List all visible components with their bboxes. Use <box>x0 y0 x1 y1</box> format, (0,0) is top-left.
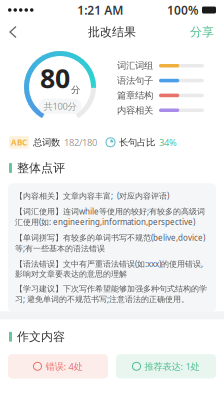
staticText: 分 <box>71 84 80 95</box>
staticText: 批改结果 <box>88 25 136 39</box>
staticText: 【词汇使用】连词while等使用的较好;有较多的高级词汇使用(如: engine… <box>15 206 205 227</box>
staticText: 34% <box>159 136 177 148</box>
staticText: 【学习建议】下次写作希望能够加强多种句式结构的学习; 避免单词的不规范书写;注意… <box>15 284 207 304</box>
staticText: 总词数 <box>33 137 60 148</box>
staticText: 篇章结构 <box>117 90 153 101</box>
button[interactable]: 推荐表达: 1处 <box>116 354 216 378</box>
staticText: 【内容相关】文章内容丰富; (对应内容评语) <box>15 190 169 201</box>
staticText: 1:21 AM <box>77 2 123 18</box>
staticText: 语法句子 <box>117 75 153 86</box>
button[interactable]: 错误: 4处 <box>8 354 108 378</box>
staticText: 【单词拼写】有较多的单词书写不规范(belive,dovice)等;有一些基本的… <box>15 232 205 253</box>
staticText: ABC <box>11 137 27 148</box>
staticText: 100% <box>167 2 199 18</box>
staticText: 182/180 <box>64 136 97 148</box>
staticText: 分享 <box>190 25 214 39</box>
staticText: 推荐表达: 1处 <box>144 360 199 372</box>
button[interactable]: Back <box>2 20 24 43</box>
staticText: 【语法错误】文中有严重语法错误(如:xxx)的使用错误,影响对文章要表达的意思的… <box>15 258 203 279</box>
staticText: 共100分 <box>43 100 76 112</box>
staticText: 错误: 4处 <box>45 360 82 372</box>
staticText: 词汇词组 <box>117 60 153 71</box>
staticText: 长句占比 <box>119 137 155 148</box>
staticText: 整体点评 <box>17 161 65 175</box>
staticText: 80 <box>40 60 70 95</box>
staticText: 作文内容 <box>17 329 65 344</box>
staticText: 内容相关 <box>117 104 153 116</box>
button[interactable]: 分享 <box>182 19 222 45</box>
